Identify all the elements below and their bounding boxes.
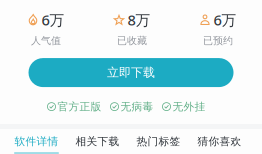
button[interactable]: 软件详情 [6,129,67,154]
staticText: 已收藏 [117,34,147,47]
staticText: 猜你喜欢 [197,135,241,148]
staticText: 官方正版 [57,100,101,113]
staticText: 相关下载 [75,135,119,148]
staticText: 热门标签 [136,135,180,148]
staticText: 8万 [127,10,150,29]
staticText: 6万 [213,10,236,29]
staticText: 立即下载 [107,65,155,80]
staticText: 已预约 [203,34,233,47]
button[interactable]: 相关下载 [67,129,128,154]
staticText: 6万 [41,10,64,29]
button[interactable]: 立即下载 [28,58,233,87]
staticText: 无外挂 [172,100,205,113]
button[interactable]: 猜你喜欢 [189,129,250,154]
staticText: 无病毒 [120,100,153,113]
staticText: 软件详情 [14,135,58,148]
staticText: 人气值 [31,34,61,47]
button[interactable]: 热门标签 [128,129,189,154]
